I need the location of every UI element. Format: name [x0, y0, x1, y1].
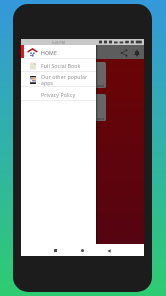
- button[interactable]: Full Social Book: [21, 59, 96, 72]
- staticText: 5:45 PM: [52, 40, 65, 45]
- button[interactable]: Notifications: [130, 46, 143, 59]
- button[interactable]: Recent apps: [51, 246, 60, 255]
- staticText: HOME: [41, 49, 88, 56]
- button[interactable]: post: [25, 94, 106, 121]
- button[interactable]: Home: [78, 246, 87, 255]
- button[interactable]: post: [25, 62, 106, 88]
- staticText: Full Social Book: [41, 62, 88, 69]
- staticText: Our other popular apps: [41, 73, 88, 86]
- button[interactable]: HOME: [21, 45, 96, 59]
- button[interactable]: Privacy Policy: [21, 87, 96, 101]
- staticText: Privacy Policy: [41, 91, 88, 98]
- button[interactable]: Back: [104, 246, 113, 255]
- staticText: post: [97, 83, 104, 88]
- button[interactable]: Share: [117, 46, 130, 59]
- button[interactable]: Our other popular apps: [21, 72, 96, 87]
- staticText: post: [97, 116, 104, 121]
